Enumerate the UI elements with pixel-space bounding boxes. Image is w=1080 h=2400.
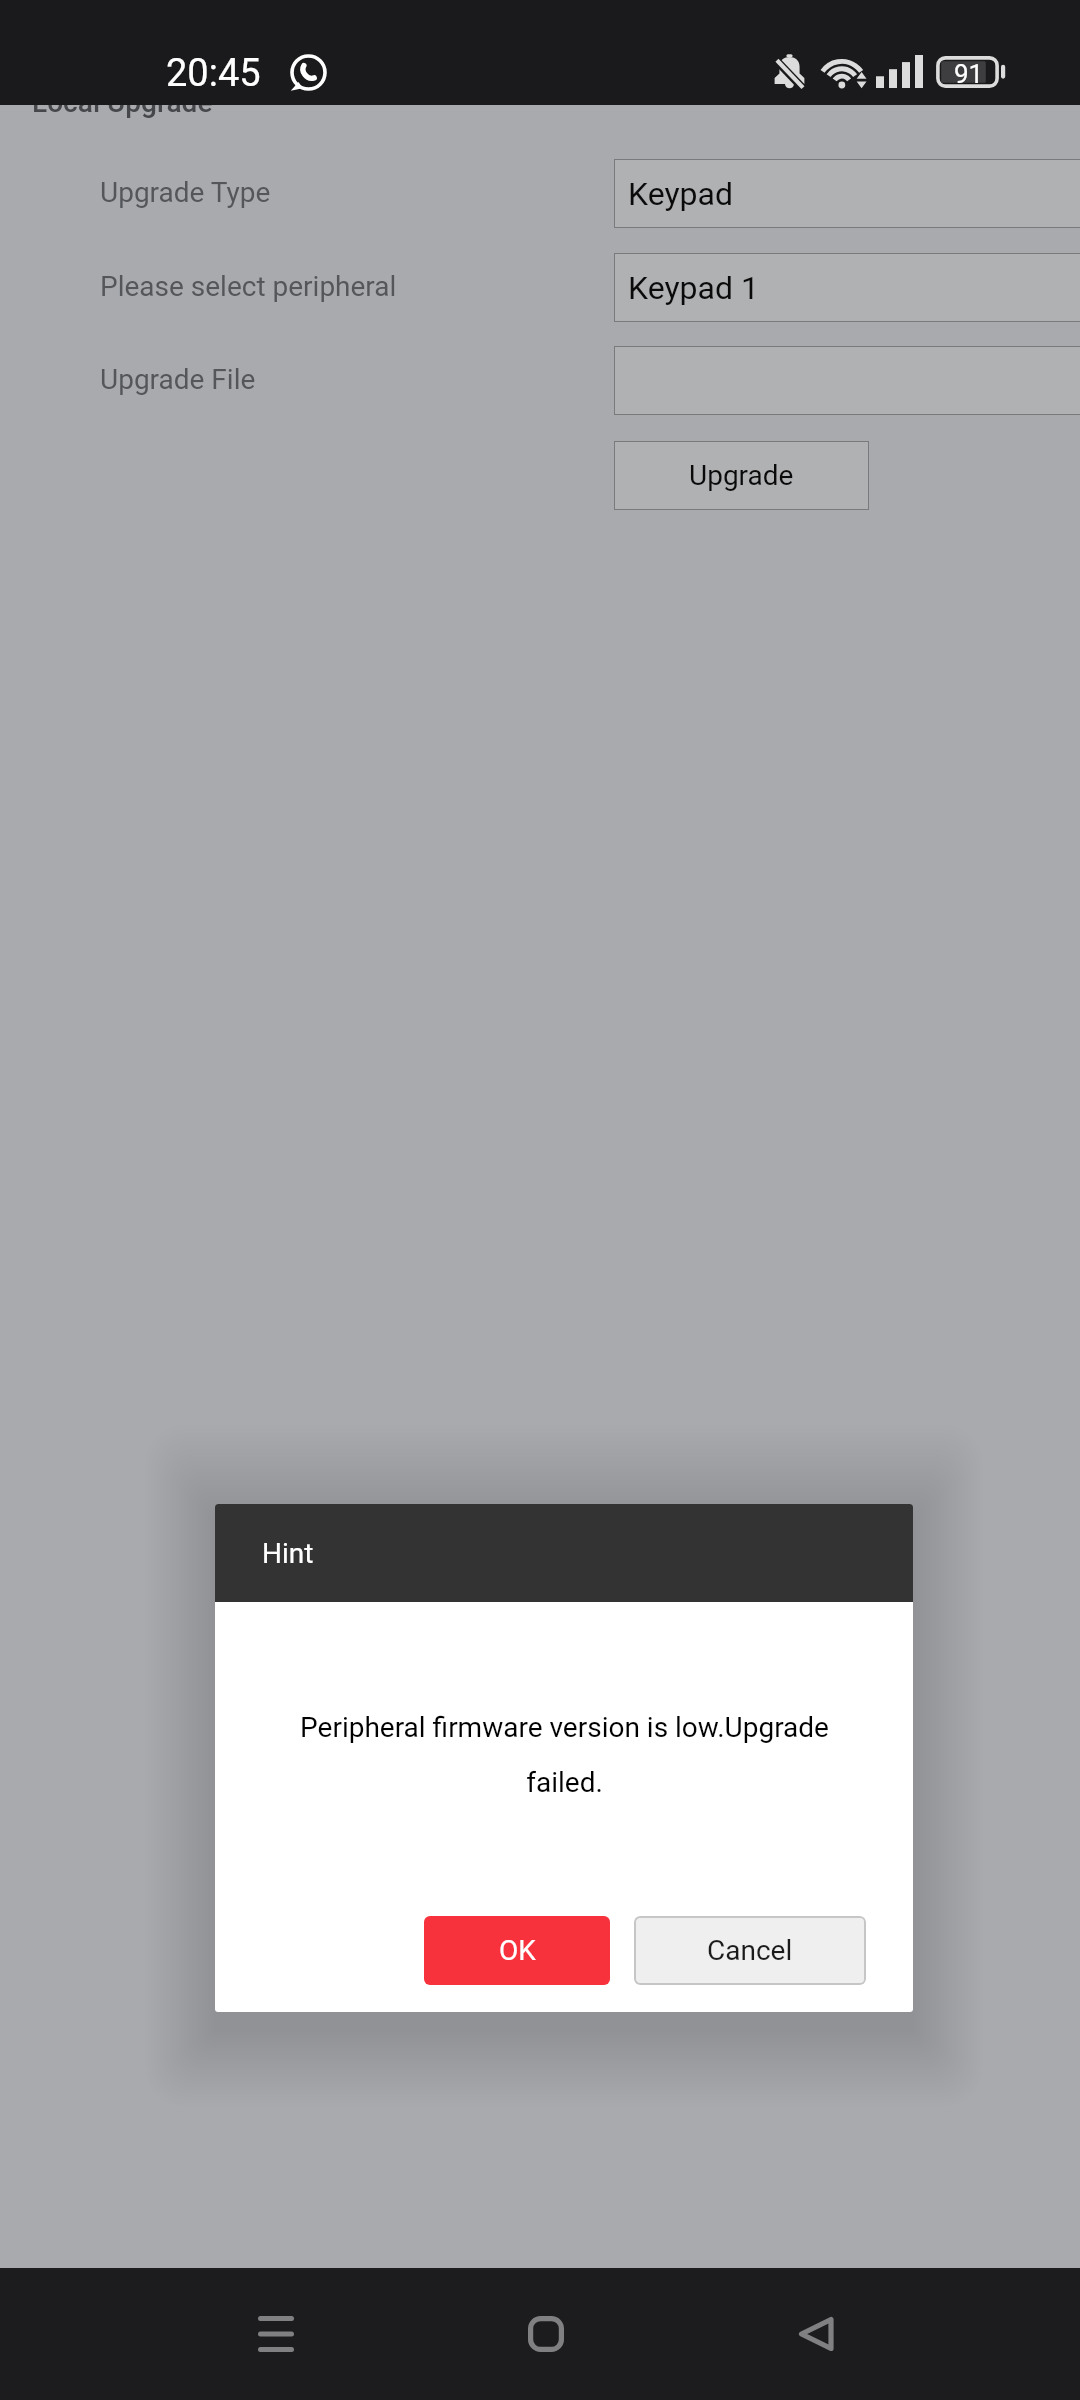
staticText: Hint [262,1537,314,1570]
button[interactable]: OK [424,1916,610,1985]
button[interactable]: Recent apps [216,2274,336,2394]
staticText: 91 [954,59,984,89]
staticText: Keypad [628,175,733,213]
staticText: OK [499,1934,536,1967]
button[interactable]: Keypad 1 [614,253,1080,322]
staticText: Please select peripheral [100,270,397,303]
button[interactable]: Upgrade [614,441,869,510]
button[interactable]: Home [486,2274,606,2394]
staticText: Upgrade [689,459,794,492]
staticText: Peripheral firmware version is low.Upgra… [292,1711,837,1798]
staticText: Keypad 1 [628,269,759,307]
button[interactable]: Cancel [634,1916,866,1985]
staticText: Upgrade File [100,363,256,396]
button[interactable]: Back [756,2274,876,2394]
staticText: 20:45 [166,51,261,96]
staticText: Local Upgrade [32,86,213,119]
button[interactable]: Keypad [614,159,1080,228]
staticText: Cancel [707,1934,793,1967]
staticText: Upgrade Type [100,176,271,209]
button[interactable] [614,346,1080,415]
